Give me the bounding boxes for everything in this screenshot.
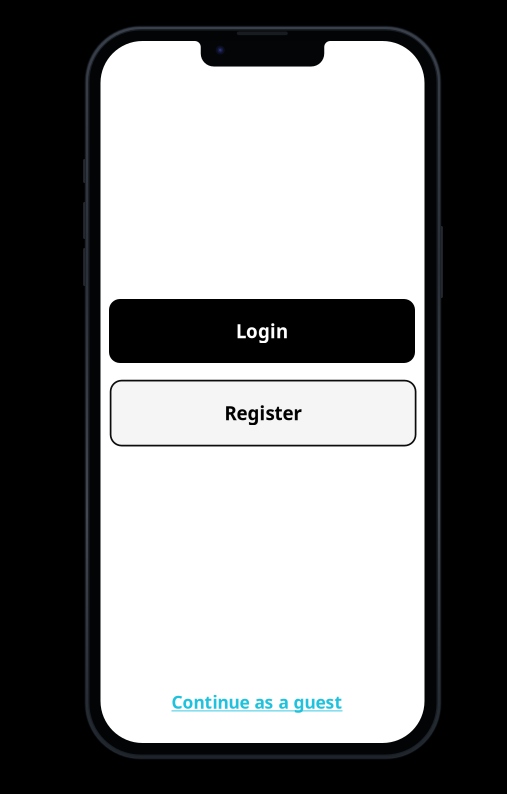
button[interactable]: Register bbox=[111, 381, 416, 446]
staticText: Login bbox=[236, 319, 288, 343]
staticText: Register bbox=[225, 401, 302, 425]
button[interactable]: Login bbox=[109, 299, 415, 363]
button[interactable]: Continue as a guest bbox=[95, 688, 419, 716]
staticText: Continue as a guest bbox=[171, 690, 342, 713]
